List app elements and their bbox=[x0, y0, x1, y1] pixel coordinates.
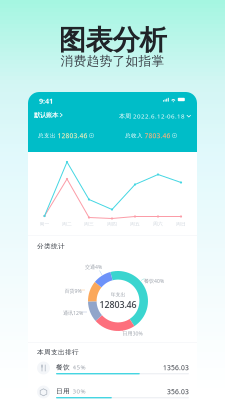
staticText: 本周 2022.6.12-06.18 bbox=[119, 112, 185, 120]
button[interactable]: 本周 2022.6.12-06.18 bbox=[118, 111, 192, 121]
staticText: 12803.46 bbox=[99, 299, 136, 311]
staticText: 本周支出排行 bbox=[37, 348, 79, 356]
staticText: 分类统计 bbox=[37, 242, 65, 250]
staticText: 30% bbox=[72, 387, 85, 395]
staticText: 周二 bbox=[62, 221, 72, 227]
staticText: 12803.46 bbox=[57, 131, 87, 140]
staticText: 默认账本 bbox=[34, 111, 58, 119]
staticText: 消费趋势了如指掌 bbox=[60, 53, 164, 69]
staticText: 日用30% bbox=[122, 330, 142, 337]
staticText: 周四 bbox=[107, 221, 117, 227]
staticText: 餐饮40% bbox=[144, 277, 164, 284]
staticText: 日用 bbox=[56, 387, 70, 395]
button[interactable]: 日用 bbox=[37, 384, 189, 400]
staticText: 45% bbox=[72, 363, 85, 371]
staticText: 周一 bbox=[39, 221, 49, 227]
button[interactable]: 餐饮 bbox=[37, 360, 189, 382]
staticText: 1356.03 bbox=[163, 363, 189, 372]
staticText: 356.03 bbox=[167, 387, 189, 396]
staticText: 7803.46 bbox=[144, 131, 170, 140]
staticText: 周日 bbox=[176, 221, 186, 227]
staticText: 总支出 bbox=[38, 132, 56, 139]
staticText: 图表分析 bbox=[58, 23, 166, 57]
staticText: 总收入 bbox=[125, 132, 143, 139]
button[interactable]: 默认账本 bbox=[33, 110, 63, 120]
staticText: 餐饮 bbox=[56, 363, 70, 371]
staticText: 通讯12% bbox=[63, 309, 83, 316]
staticText: 周三 bbox=[84, 221, 94, 227]
staticText: 9:41 bbox=[39, 96, 53, 106]
staticText: 百货9% bbox=[64, 287, 81, 294]
staticText: 年支出 bbox=[110, 291, 125, 298]
staticText: 周五 bbox=[130, 221, 140, 227]
staticText: 周六 bbox=[153, 221, 163, 227]
staticText: 交通4% bbox=[85, 263, 102, 270]
